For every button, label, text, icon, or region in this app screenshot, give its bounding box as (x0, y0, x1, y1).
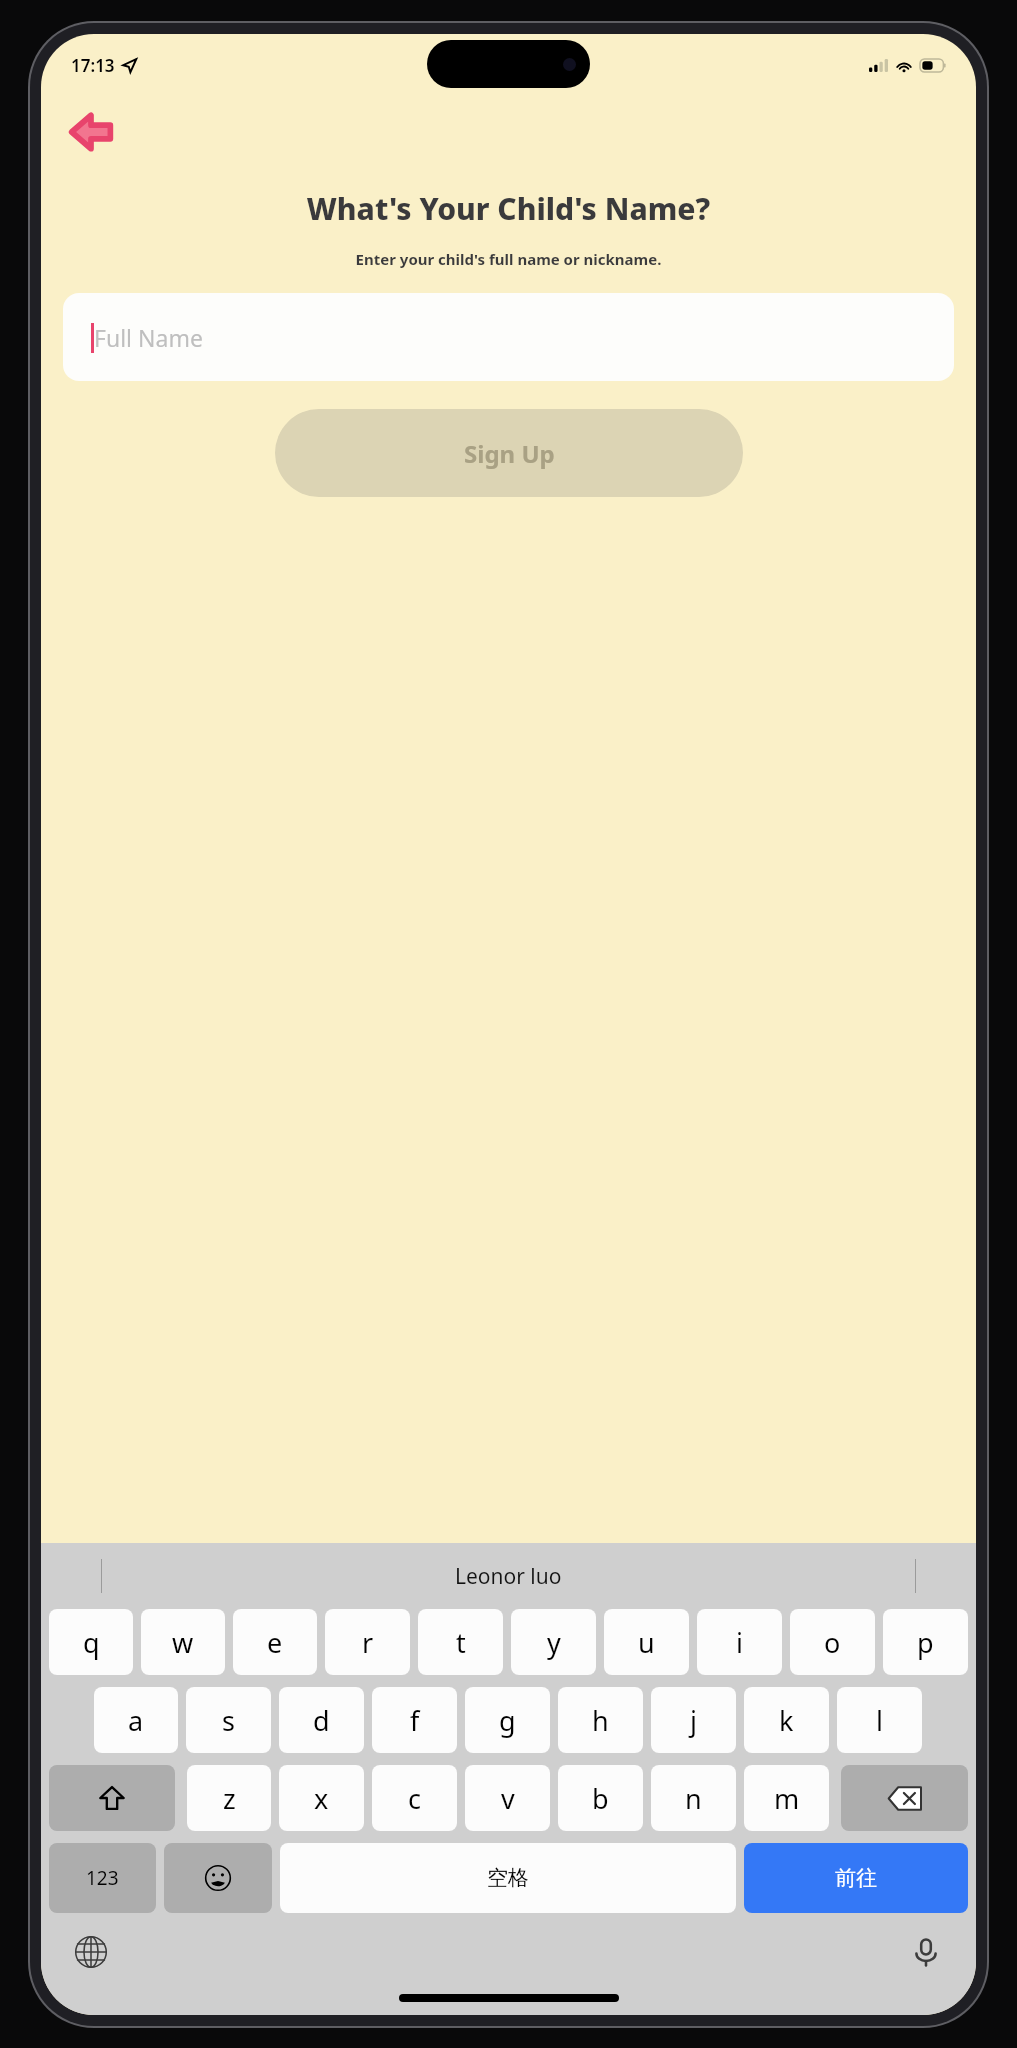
button[interactable]: k (744, 1687, 829, 1753)
button[interactable]: g (465, 1687, 550, 1753)
staticText: l (876, 1702, 883, 1739)
button[interactable]: Leonor luo (455, 1562, 562, 1591)
staticText: d (313, 1702, 330, 1739)
button[interactable]: p (883, 1609, 968, 1675)
staticText: x (314, 1780, 329, 1817)
button[interactable]: Key (841, 1765, 968, 1831)
button[interactable]: a (94, 1687, 178, 1753)
staticText: o (824, 1624, 841, 1661)
button[interactable]: Change keyboard (67, 1928, 115, 1976)
staticText: 空格 (487, 1865, 529, 1891)
button[interactable]: c (372, 1765, 457, 1831)
button[interactable]: n (651, 1765, 736, 1831)
staticText: m (774, 1780, 800, 1817)
button[interactable]: r (325, 1609, 410, 1675)
staticText: c (408, 1780, 421, 1817)
button[interactable]: b (558, 1765, 643, 1831)
button[interactable]: z (187, 1765, 271, 1831)
staticText: 123 (86, 1865, 119, 1891)
staticText: i (736, 1624, 743, 1661)
button[interactable]: j (651, 1687, 736, 1753)
button[interactable]: w (141, 1609, 225, 1675)
staticText: q (83, 1624, 100, 1661)
button[interactable]: Emoji (164, 1843, 272, 1913)
button[interactable]: Back (55, 96, 127, 168)
staticText: v (501, 1780, 515, 1817)
button[interactable]: l (837, 1687, 922, 1753)
button[interactable]: i (697, 1609, 782, 1675)
staticText: p (917, 1624, 934, 1661)
staticText: u (638, 1624, 655, 1661)
staticText: w (172, 1624, 194, 1661)
button[interactable]: Sign Up (275, 409, 743, 497)
staticText: s (222, 1702, 235, 1739)
button[interactable]: 空格 (280, 1843, 736, 1913)
button[interactable]: s (186, 1687, 271, 1753)
staticText: b (592, 1780, 609, 1817)
staticText: y (547, 1624, 561, 1661)
staticText: z (223, 1780, 236, 1817)
button[interactable]: t (418, 1609, 503, 1675)
staticText: e (267, 1624, 283, 1661)
staticText: Full Name (94, 322, 203, 353)
button[interactable]: x (279, 1765, 364, 1831)
staticText: Sign Up (464, 437, 555, 470)
button[interactable]: v (465, 1765, 550, 1831)
staticText: n (685, 1780, 702, 1817)
staticText: h (592, 1702, 609, 1739)
button[interactable]: h (558, 1687, 643, 1753)
button[interactable]: y (511, 1609, 596, 1675)
staticText: 前往 (835, 1865, 877, 1891)
staticText: 17:13 (71, 54, 115, 77)
button[interactable]: u (604, 1609, 689, 1675)
button[interactable]: f (372, 1687, 457, 1753)
staticText: g (499, 1702, 516, 1739)
button[interactable]: e (233, 1609, 317, 1675)
button[interactable]: 前往 (744, 1843, 968, 1913)
button[interactable]: Dictation (902, 1928, 950, 1976)
staticText: j (690, 1702, 697, 1739)
button[interactable]: m (744, 1765, 829, 1831)
button[interactable]: 123 (49, 1843, 156, 1913)
staticText: r (362, 1624, 374, 1661)
staticText: What's Your Child's Name? (49, 188, 968, 229)
staticText: k (779, 1702, 794, 1739)
staticText: f (410, 1702, 420, 1739)
button[interactable]: d (279, 1687, 364, 1753)
button[interactable]: Full Name (63, 293, 954, 381)
staticText: Enter your child's full name or nickname… (55, 249, 962, 269)
button[interactable]: o (790, 1609, 875, 1675)
button[interactable]: q (49, 1609, 133, 1675)
button[interactable]: Key (49, 1765, 175, 1831)
staticText: a (128, 1702, 144, 1739)
staticText: t (456, 1624, 466, 1661)
